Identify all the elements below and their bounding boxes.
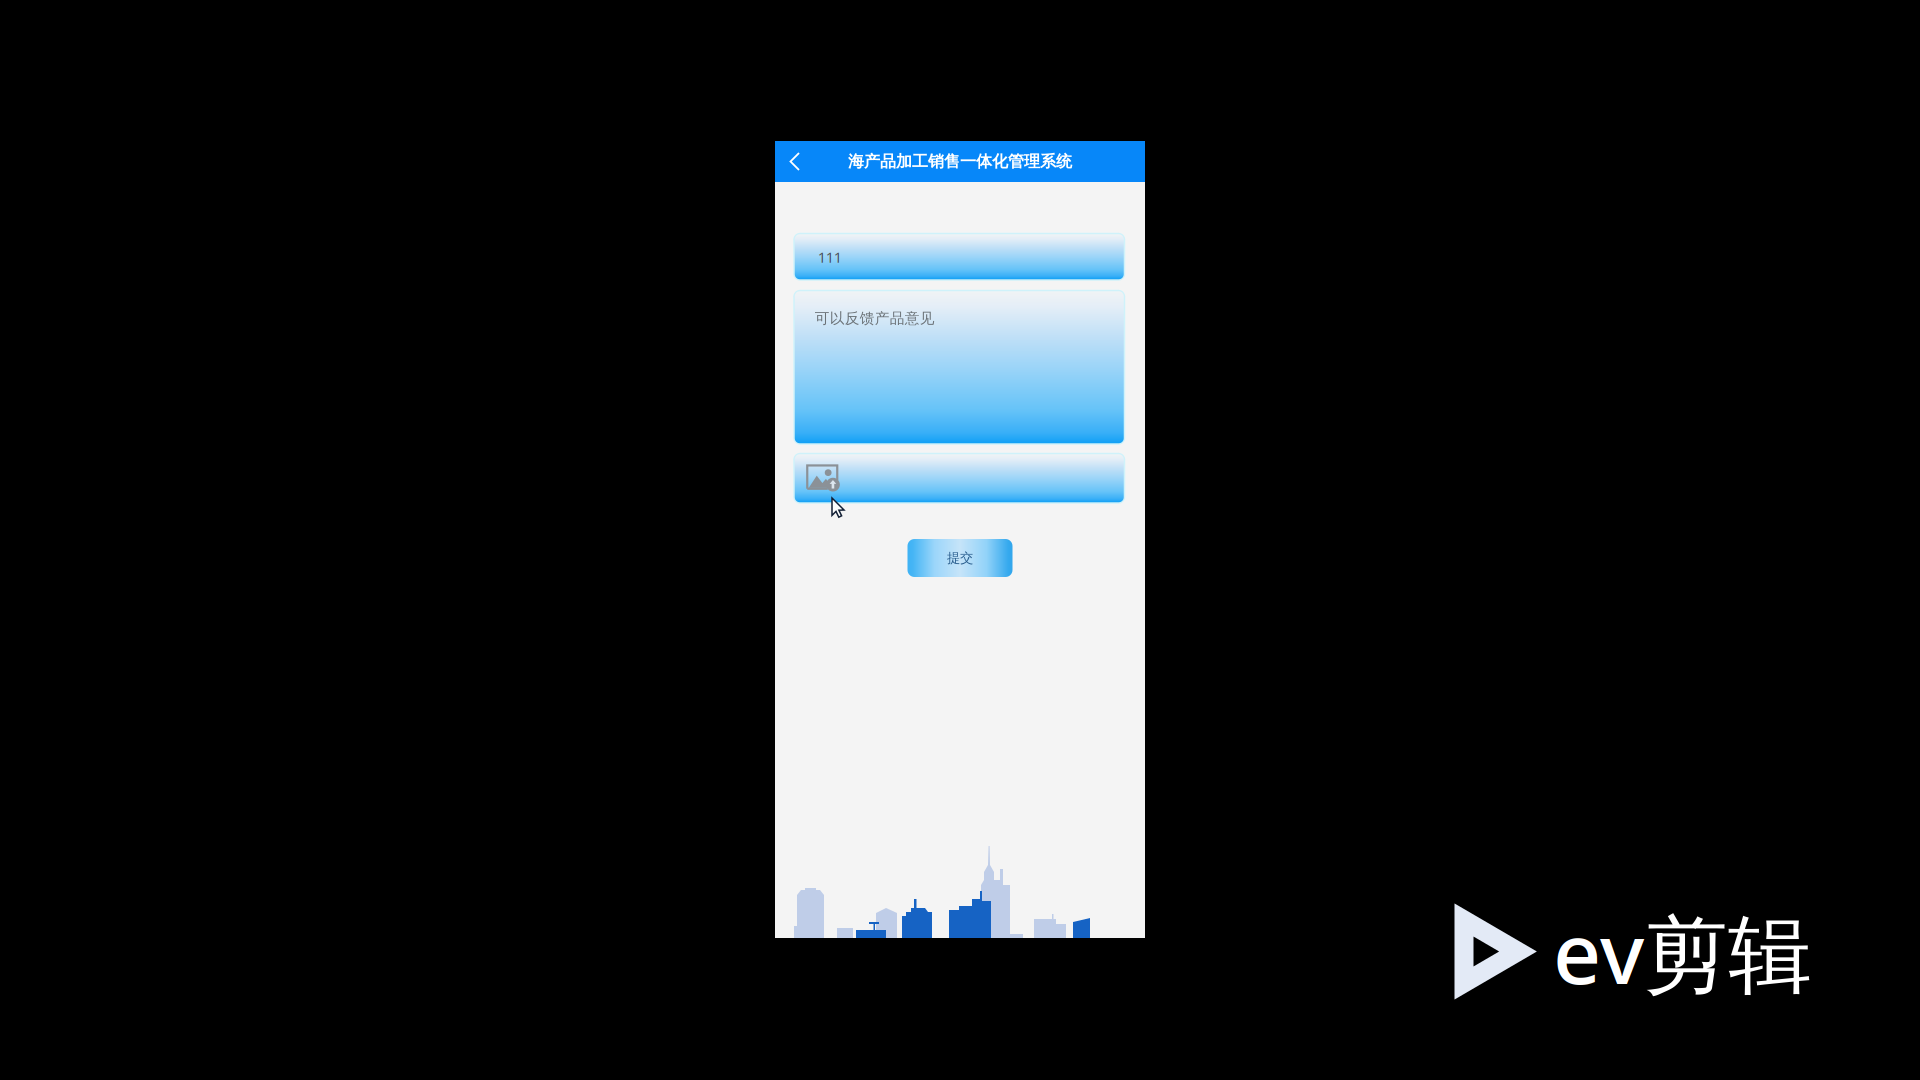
button[interactable]: 提交 [907, 539, 1012, 577]
staticText: 111 [818, 247, 842, 267]
staticText: 提交 [947, 550, 973, 566]
staticText: 海产品加工销售一体化管理系统 [848, 152, 1072, 171]
button[interactable]: Upload photo [795, 455, 1124, 503]
staticText: ev剪辑 [1553, 895, 1812, 1007]
button[interactable]: 可以反馈产品意见 [795, 292, 1124, 444]
staticText: 可以反馈产品意见 [815, 309, 935, 327]
button[interactable]: 111 [795, 235, 1124, 280]
button[interactable]: Back [775, 141, 815, 182]
